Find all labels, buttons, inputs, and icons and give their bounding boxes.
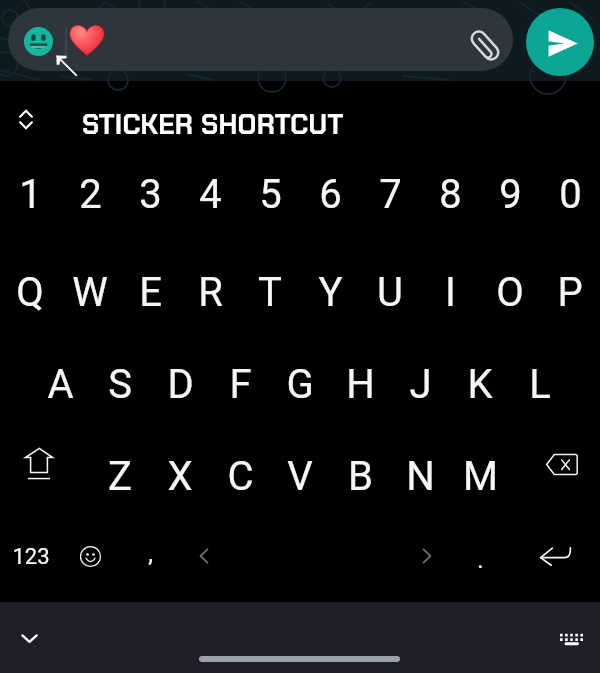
button[interactable]: W [61, 263, 119, 321]
button[interactable]: , [121, 525, 179, 583]
button[interactable]: H [331, 355, 389, 413]
button[interactable]: 4 [181, 165, 239, 223]
button[interactable]: L [511, 355, 569, 413]
button[interactable]: J [391, 355, 449, 413]
button[interactable]: G [271, 355, 329, 413]
staticText: H [346, 361, 375, 408]
button[interactable]: 9 [481, 165, 539, 223]
staticText: 3 [139, 171, 162, 218]
staticText: 123 [12, 544, 50, 570]
button[interactable]: Y [301, 263, 359, 321]
staticText: 1 [19, 171, 42, 218]
button[interactable]: Attach [458, 18, 512, 71]
button[interactable]: S [91, 355, 149, 413]
button[interactable]: E [121, 263, 179, 321]
button[interactable]: R [181, 263, 239, 321]
staticText: L [529, 361, 551, 408]
staticText: M [463, 453, 498, 500]
button[interactable]: STICKER SHORTCUT [82, 106, 362, 142]
button[interactable]: Send [526, 8, 594, 76]
button[interactable]: 123 [2, 528, 60, 586]
button[interactable]: K [451, 355, 509, 413]
staticText: B [348, 453, 373, 500]
staticText: 6 [319, 171, 342, 218]
staticText: R [198, 269, 223, 316]
staticText: W [72, 269, 108, 316]
staticText: 9 [499, 171, 522, 218]
button[interactable]: T [241, 263, 299, 321]
button[interactable]: Emoji [14, 17, 62, 65]
staticText: 2 [79, 171, 102, 218]
button[interactable]: A [31, 355, 89, 413]
staticText: J [409, 361, 432, 408]
button[interactable]: 8 [421, 165, 479, 223]
button[interactable]: C [211, 447, 269, 505]
button[interactable]: Backspace [536, 438, 588, 490]
staticText: G [286, 361, 314, 408]
staticText: P [557, 269, 583, 316]
button[interactable]: V [271, 447, 329, 505]
button[interactable]: P [541, 263, 599, 321]
button[interactable]: Previous [178, 530, 230, 582]
button[interactable]: 7 [361, 165, 419, 223]
staticText: 0 [559, 171, 582, 218]
staticText: C [227, 453, 254, 500]
staticText: 7 [379, 171, 402, 218]
button[interactable]: D [151, 355, 209, 413]
staticText: X [167, 453, 193, 500]
button[interactable]: 0 [541, 165, 599, 223]
staticText: STICKER SHORTCUT [82, 107, 344, 142]
staticText: U [377, 269, 403, 316]
button[interactable]: B [331, 447, 389, 505]
button[interactable]: N [391, 447, 449, 505]
button[interactable]: Emoji keyboard [64, 530, 116, 582]
button[interactable]: Next [401, 530, 453, 582]
button[interactable]: F [211, 355, 269, 413]
button[interactable]: 1 [1, 165, 59, 223]
staticText: 5 [259, 171, 282, 218]
staticText: Y [318, 269, 343, 316]
button[interactable]: Hide keyboard [4, 613, 55, 664]
staticText: 4 [199, 171, 222, 218]
staticText: I [445, 269, 456, 316]
button[interactable]: Shift [13, 438, 65, 490]
staticText: V [287, 453, 313, 500]
staticText: Z [108, 453, 132, 500]
button[interactable]: U [361, 263, 419, 321]
button[interactable]: Q [1, 263, 59, 321]
staticText: D [167, 361, 194, 408]
button[interactable]: 3 [121, 165, 179, 223]
staticText: T [258, 269, 282, 316]
button[interactable]: Emoji [8, 8, 513, 71]
button[interactable]: Z [91, 447, 149, 505]
button[interactable]: M [451, 447, 509, 505]
staticText: S [108, 361, 132, 408]
staticText: F [229, 361, 252, 408]
button[interactable]: Enter [529, 530, 581, 582]
button[interactable]: . [451, 531, 509, 589]
button[interactable]: O [481, 263, 539, 321]
button[interactable]: Expand sticker shortcut [8, 102, 43, 137]
staticText: A [47, 361, 74, 408]
staticText: K [467, 361, 493, 408]
button[interactable]: X [151, 447, 209, 505]
button[interactable]: 2 [61, 165, 119, 223]
staticText: Q [16, 269, 44, 316]
staticText: 8 [439, 171, 462, 218]
staticText: E [139, 269, 162, 316]
button[interactable]: Switch keyboard [546, 613, 597, 664]
staticText: . [477, 546, 484, 574]
staticText: O [496, 269, 524, 316]
button[interactable]: 6 [301, 165, 359, 223]
staticText: , [148, 540, 153, 568]
button[interactable]: I [421, 263, 479, 321]
button[interactable]: 5 [241, 165, 299, 223]
staticText: N [406, 453, 435, 500]
